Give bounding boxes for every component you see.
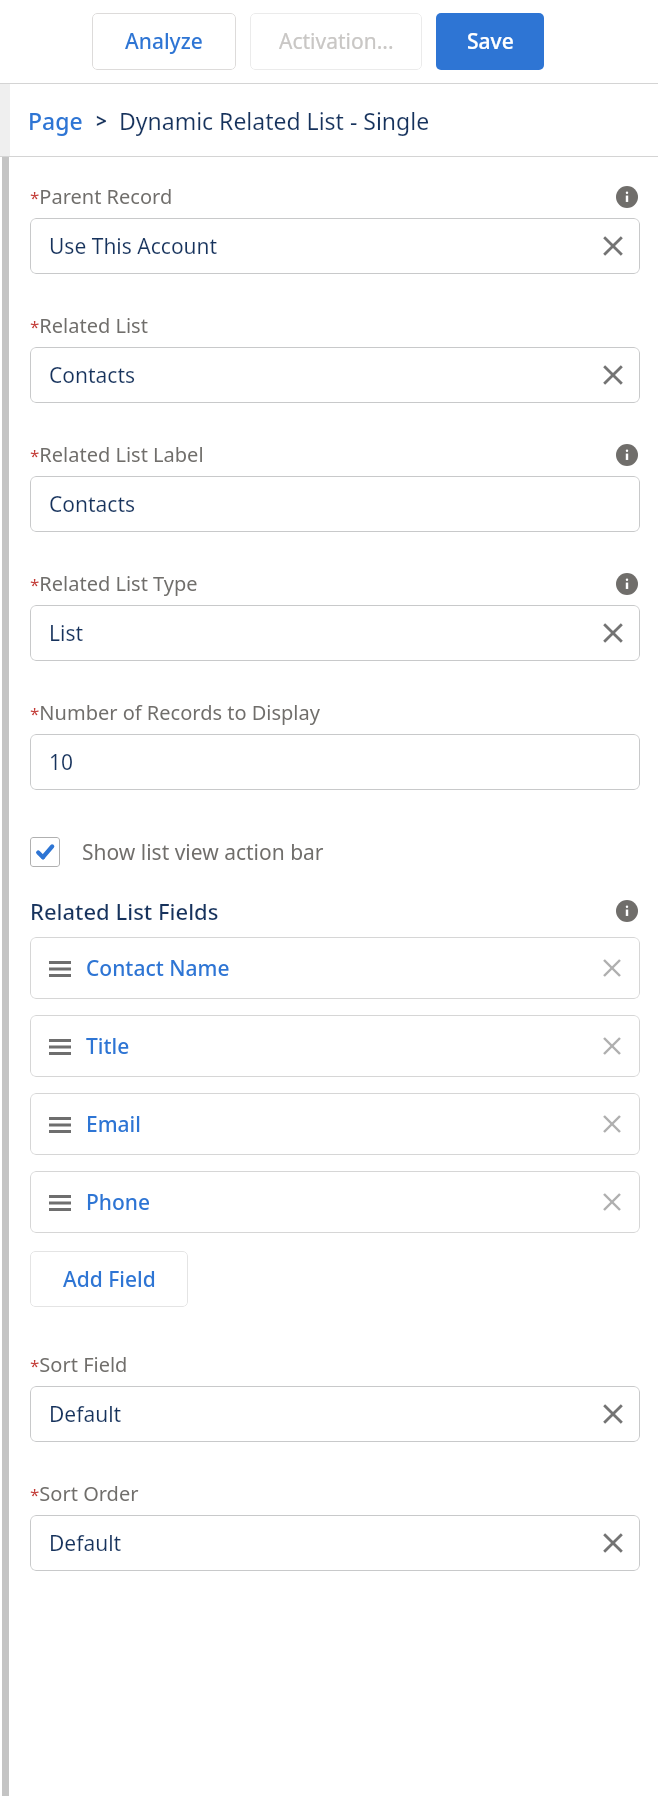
staticText: *Sort Order [30,1480,139,1507]
staticText: Show list view action bar [82,838,324,867]
staticText: Default [49,1400,122,1429]
staticText: *Parent Record [30,183,173,210]
staticText: *Sort Field [30,1351,128,1378]
button[interactable]: Page [28,105,83,136]
button[interactable]: Contact Name [30,937,640,999]
staticText: Related List Fields [30,896,219,926]
button[interactable]: Clear [596,1186,628,1218]
staticText: Contacts [49,361,136,390]
button[interactable]: Use This Account [30,218,640,274]
button[interactable]: Help [614,442,640,468]
button[interactable]: Phone [30,1171,640,1233]
staticText: *Related List [30,312,148,339]
button[interactable]: Clear [596,1526,630,1560]
staticText: Analyze [125,27,203,56]
button[interactable]: Clear [596,1108,628,1140]
button[interactable]: Clear [596,1030,628,1062]
staticText: Title [86,1032,130,1061]
button[interactable]: Email [30,1093,640,1155]
button[interactable]: Analyze [92,13,236,70]
staticText: Contact Name [86,954,230,983]
button[interactable]: 10 [30,734,640,790]
button[interactable]: Contacts [30,476,640,532]
button[interactable]: Default [30,1386,640,1442]
button[interactable]: Default [30,1515,640,1571]
button[interactable]: Help [614,184,640,210]
button[interactable]: Clear [596,1397,630,1431]
staticText: > [96,108,107,134]
button[interactable]: List [30,605,640,661]
button[interactable]: Help [614,898,640,924]
staticText: Email [86,1110,141,1139]
staticText: List [49,619,84,648]
staticText: Dynamic Related List - Single [119,105,430,136]
button[interactable]: Add Field [30,1251,188,1307]
button[interactable]: Clear [596,229,630,263]
staticText: Add Field [63,1265,156,1294]
staticText: Save [467,27,514,56]
staticText: Default [49,1529,122,1558]
staticText: *Related List Type [30,570,198,597]
button[interactable]: Clear [596,616,630,650]
staticText: Use This Account [49,232,218,261]
staticText: 10 [49,748,74,777]
button[interactable]: Activation... [250,13,422,70]
button[interactable]: Title [30,1015,640,1077]
staticText: *Related List Label [30,441,204,468]
button[interactable]: Save [436,13,544,70]
button[interactable]: Clear [596,358,630,392]
button[interactable]: Clear [596,952,628,984]
staticText: Activation... [279,27,394,56]
staticText: Contacts [49,490,136,519]
button[interactable]: Show list view action bar [30,830,640,874]
staticText: *Number of Records to Display [30,699,320,726]
button[interactable]: Contacts [30,347,640,403]
staticText: Phone [86,1188,151,1217]
button[interactable]: Help [614,571,640,597]
